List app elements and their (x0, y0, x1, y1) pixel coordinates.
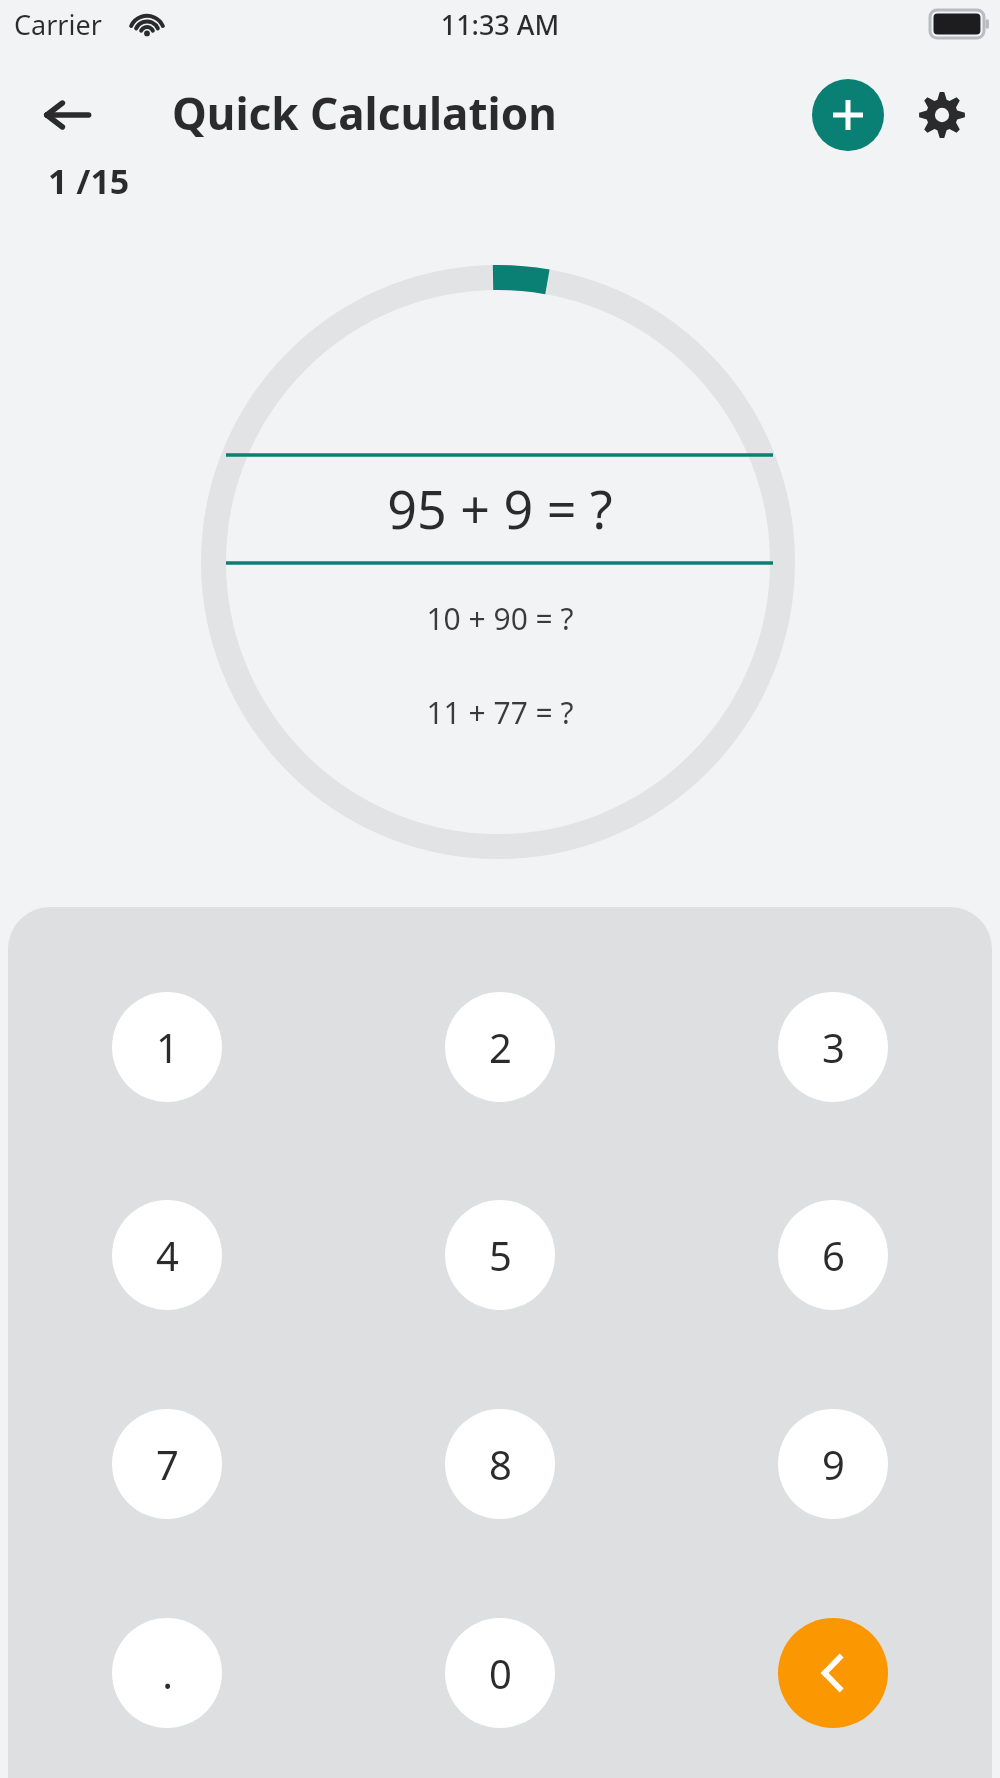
button[interactable]: 4 (112, 1200, 222, 1310)
button[interactable]: 2 (445, 992, 555, 1102)
staticText: 95 + 9 = ? (0, 473, 1000, 1778)
staticText: Carrier (14, 6, 102, 43)
button[interactable]: Backspace (778, 1618, 888, 1728)
staticText: 4 (156, 1228, 179, 1282)
button[interactable]: 8 (445, 1409, 555, 1519)
button[interactable]: 3 (778, 992, 888, 1102)
staticText: 8 (489, 1437, 512, 1491)
button[interactable]: . (112, 1618, 222, 1728)
button[interactable]: 6 (778, 1200, 888, 1310)
staticText: 11:33 AM (0, 6, 1000, 1778)
staticText: 11 + 77 = ? (0, 692, 1000, 1778)
button[interactable]: 1 (112, 992, 222, 1102)
staticText: 1 (156, 1020, 179, 1074)
button[interactable]: Settings (900, 73, 984, 157)
staticText: Quick Calculation (172, 83, 557, 143)
button[interactable]: 5 (445, 1200, 555, 1310)
staticText: 6 (822, 1228, 845, 1282)
button[interactable]: Back (24, 72, 110, 158)
staticText: 9 (822, 1437, 845, 1491)
staticText: . (162, 1646, 173, 1700)
staticText: 0 (489, 1646, 512, 1700)
staticText: 10 + 90 = ? (0, 598, 1000, 1778)
staticText: 2 (489, 1020, 512, 1074)
button[interactable]: 7 (112, 1409, 222, 1519)
button[interactable]: 0 (445, 1618, 555, 1728)
staticText: 5 (489, 1228, 512, 1282)
staticText: 1 /15 (48, 158, 130, 204)
staticText: 3 (822, 1020, 845, 1074)
button[interactable]: Add (812, 79, 884, 151)
button[interactable]: 9 (778, 1409, 888, 1519)
staticText: 7 (156, 1437, 179, 1491)
